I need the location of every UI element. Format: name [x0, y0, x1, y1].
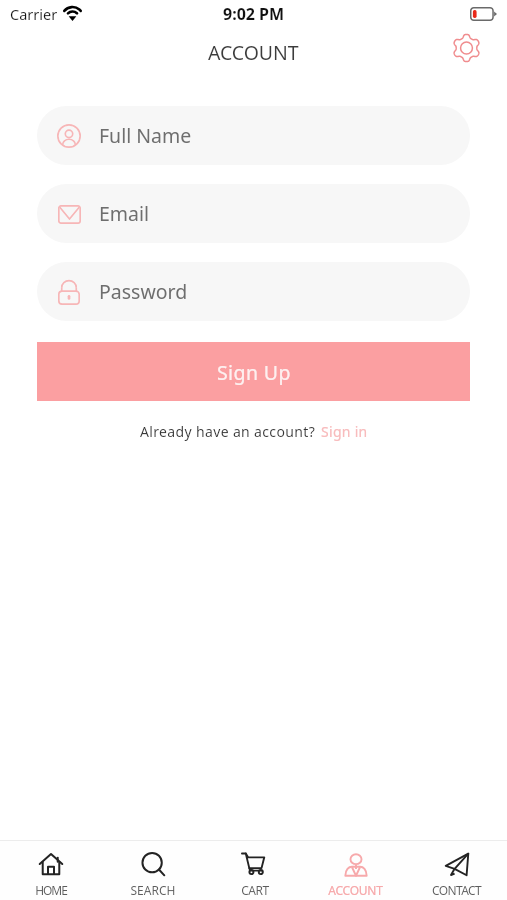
- staticText: CART: [241, 882, 269, 898]
- button[interactable]: HOME: [0, 841, 102, 900]
- button[interactable]: Password: [37, 262, 470, 321]
- button[interactable]: Settings: [446, 28, 486, 68]
- staticText: CONTACT: [432, 882, 481, 898]
- staticText: HOME: [35, 882, 67, 898]
- staticText: ACCOUNT: [208, 39, 299, 66]
- staticText: ACCOUNT: [328, 882, 383, 898]
- button[interactable]: SEARCH: [102, 841, 204, 900]
- staticText: SEARCH: [130, 882, 176, 898]
- staticText: Sign Up: [217, 359, 291, 386]
- staticText: Carrier: [10, 4, 58, 24]
- button[interactable]: Sign Up: [37, 342, 470, 401]
- staticText: Already have an account?: [140, 422, 316, 441]
- staticText: 9:02 PM: [223, 3, 285, 25]
- button[interactable]: CART: [204, 841, 305, 900]
- staticText: Email: [99, 200, 150, 227]
- staticText: Sign in: [321, 422, 368, 441]
- staticText: Full Name: [99, 122, 192, 149]
- button[interactable]: Email: [37, 184, 470, 243]
- button[interactable]: Sign in: [321, 422, 368, 441]
- button[interactable]: ACCOUNT: [305, 841, 406, 900]
- button[interactable]: CONTACT: [406, 841, 507, 900]
- staticText: Password: [99, 278, 188, 305]
- button[interactable]: Full Name: [37, 106, 470, 165]
